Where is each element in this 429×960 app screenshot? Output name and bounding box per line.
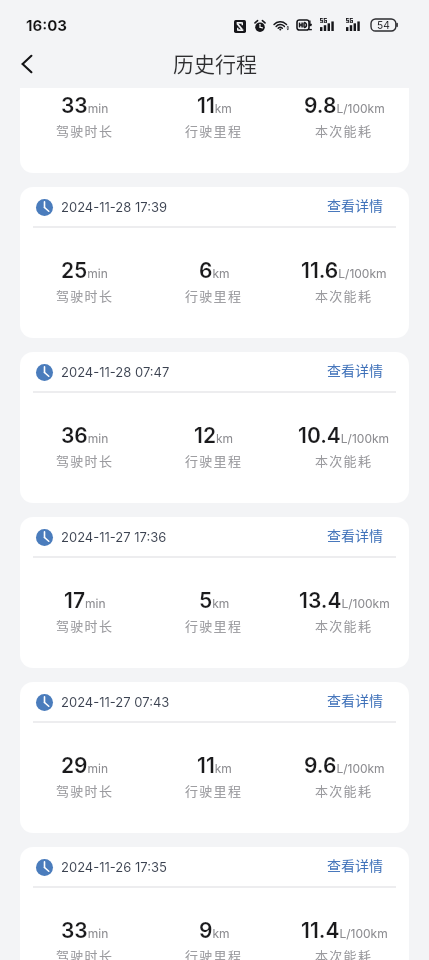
- staticText: 查看详情: [327, 195, 383, 215]
- button[interactable]: 查看详情: [327, 191, 383, 219]
- staticText: 驾驶时长: [56, 121, 114, 140]
- staticText: 行驶里程: [185, 616, 243, 635]
- staticText: 2024-11-28 17:39: [61, 199, 168, 215]
- staticText: 11km: [197, 753, 232, 778]
- button[interactable]: 查看详情: [327, 521, 383, 549]
- staticText: 2024-11-26 17:35: [61, 859, 167, 875]
- staticText: 行驶里程: [185, 451, 243, 470]
- staticText: 17min: [64, 588, 106, 613]
- staticText: 行驶里程: [185, 781, 243, 800]
- staticText: 9.6L/100km: [304, 753, 385, 778]
- staticText: 行驶里程: [185, 946, 243, 960]
- staticText: 查看详情: [327, 360, 383, 380]
- staticText: 本次能耗: [315, 616, 373, 635]
- staticText: 13.4L/100km: [299, 588, 390, 613]
- staticText: 11.6L/100km: [301, 258, 387, 283]
- staticText: 查看详情: [327, 855, 383, 875]
- staticText: 本次能耗: [315, 781, 373, 800]
- button[interactable]: 查看详情: [327, 851, 383, 879]
- staticText: 36min: [61, 423, 109, 448]
- staticText: 2024-11-28 07:47: [61, 364, 170, 380]
- staticText: 10.4L/100km: [298, 423, 390, 448]
- staticText: 11km: [197, 93, 232, 118]
- button[interactable]: 2024-11-27 17:36: [20, 517, 409, 668]
- staticText: 16:03: [26, 16, 68, 34]
- staticText: 驾驶时长: [56, 616, 114, 635]
- staticText: 行驶里程: [185, 286, 243, 305]
- button[interactable]: 2024-11-28 18:02: [20, 22, 409, 173]
- staticText: 5km: [199, 588, 230, 613]
- staticText: 历史行程: [173, 48, 257, 78]
- button[interactable]: 查看详情: [327, 686, 383, 714]
- staticText: 本次能耗: [315, 451, 373, 470]
- staticText: 25min: [61, 258, 108, 283]
- staticText: 54: [377, 19, 390, 31]
- staticText: 9.8L/100km: [304, 93, 385, 118]
- staticText: 驾驶时长: [56, 781, 114, 800]
- button[interactable]: 查看详情: [327, 26, 383, 54]
- staticText: 11.4L/100km: [301, 918, 388, 943]
- staticText: 33min: [61, 93, 109, 118]
- button[interactable]: 2024-11-27 07:43: [20, 682, 409, 833]
- staticText: 查看详情: [327, 30, 383, 50]
- staticText: 2024-11-27 17:36: [61, 529, 167, 545]
- button[interactable]: 2024-11-28 07:47: [20, 352, 409, 503]
- staticText: 驾驶时长: [56, 451, 114, 470]
- staticText: 行驶里程: [185, 121, 243, 140]
- staticText: 驾驶时长: [56, 946, 114, 960]
- staticText: 查看详情: [327, 690, 383, 710]
- button[interactable]: 查看详情: [327, 356, 383, 384]
- button[interactable]: 2024-11-28 17:39: [20, 187, 409, 338]
- staticText: 29min: [61, 753, 109, 778]
- staticText: 查看详情: [327, 525, 383, 545]
- staticText: 12km: [194, 423, 234, 448]
- staticText: 本次能耗: [315, 946, 373, 960]
- staticText: 33min: [61, 918, 109, 943]
- staticText: 6km: [199, 258, 230, 283]
- staticText: 2024-11-27 07:43: [61, 694, 170, 710]
- staticText: 本次能耗: [315, 121, 373, 140]
- staticText: 9km: [199, 918, 230, 943]
- button[interactable]: 2024-11-26 17:35: [20, 847, 409, 960]
- staticText: 驾驶时长: [56, 286, 114, 305]
- button[interactable]: Back: [11, 48, 43, 80]
- staticText: 本次能耗: [315, 286, 373, 305]
